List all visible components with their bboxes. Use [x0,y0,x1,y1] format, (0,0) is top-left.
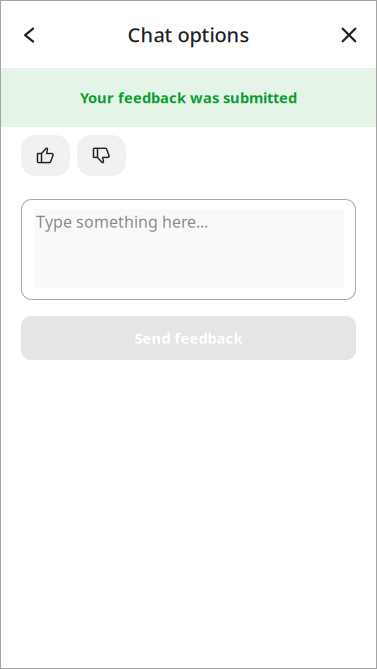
staticText: Chat options [127,21,249,48]
button[interactable]: Close [327,11,371,57]
button[interactable]: Type something here... [21,199,356,300]
staticText: Your feedback was submitted [80,88,297,107]
staticText: Send feedback [134,328,242,348]
staticText: Type something here... [36,211,208,232]
button[interactable]: Send feedback [21,316,356,360]
button[interactable]: Back [7,11,51,57]
button[interactable]: Thumbs up [21,135,70,176]
button[interactable]: Thumbs down [77,135,126,176]
